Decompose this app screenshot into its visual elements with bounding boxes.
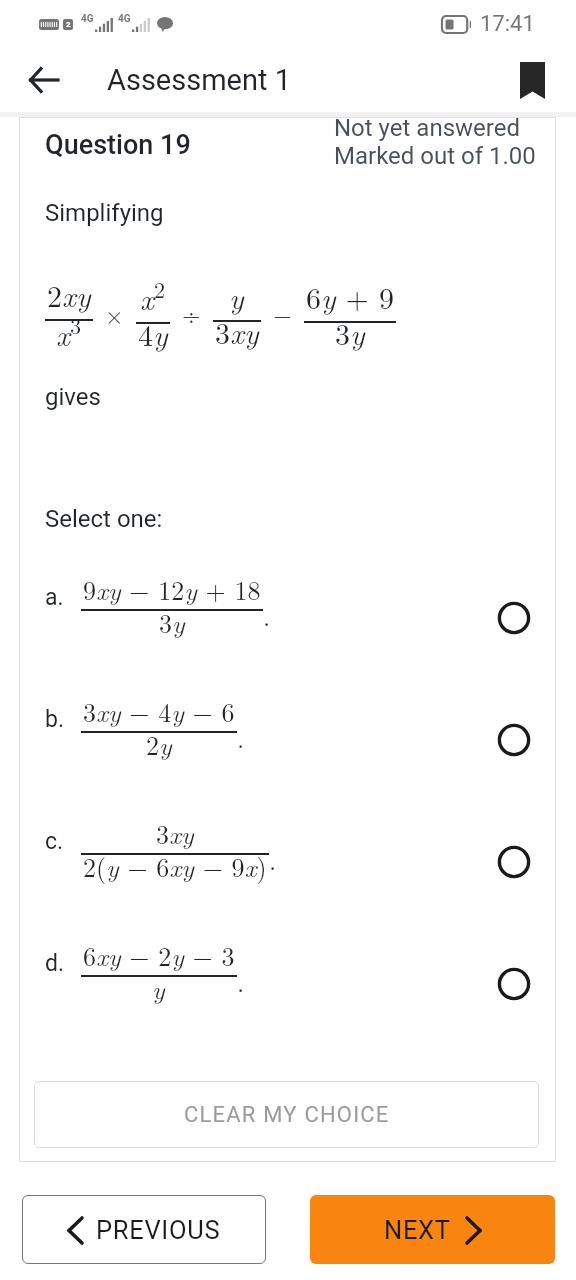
staticText: 3xy	[215, 310, 259, 353]
button[interactable]: c.	[45, 827, 536, 897]
button[interactable]: d.	[45, 949, 536, 1019]
staticText: 2xy	[47, 273, 91, 316]
staticText: 3xy − 4y − 6	[83, 693, 235, 730]
staticText: x2	[140, 273, 166, 319]
staticText: Select one:	[45, 505, 163, 533]
staticText: gives	[45, 383, 101, 411]
staticText: −	[273, 297, 292, 331]
staticText: 6y + 9	[306, 275, 394, 318]
staticText: .	[237, 963, 245, 1000]
button[interactable]: CLEAR MY CHOICE	[34, 1081, 539, 1148]
staticText: 4y	[138, 312, 168, 355]
staticText: d.	[45, 950, 81, 977]
staticText: y	[229, 275, 244, 317]
staticText: y	[152, 970, 165, 1007]
button[interactable]: b.	[45, 705, 536, 775]
staticText: 4G	[81, 13, 94, 25]
staticText: Question 19	[45, 129, 191, 161]
staticText: Assessment 1	[107, 63, 291, 97]
button[interactable]: Bookmark	[508, 56, 556, 104]
staticText: 3y	[335, 311, 365, 354]
staticText: ×	[105, 297, 124, 331]
button[interactable]: a.	[45, 583, 536, 653]
staticText: 9xy − 12y + 18	[83, 571, 261, 608]
staticText: Marked out of 1.00	[334, 142, 536, 170]
staticText: 2(y − 6xy − 9x)	[83, 848, 267, 885]
button[interactable]: Back	[20, 56, 68, 104]
staticText: Not yet answered	[334, 114, 520, 142]
staticText: 2	[66, 20, 71, 29]
staticText: 2y	[146, 726, 172, 763]
staticText: ÷	[182, 297, 201, 331]
staticText: PREVIOUS	[96, 1215, 221, 1245]
staticText: Simplifying	[45, 199, 164, 227]
staticText: 4G	[118, 13, 131, 25]
staticText: NEXT	[384, 1215, 451, 1245]
staticText: x3	[56, 309, 82, 355]
staticText: .	[269, 841, 277, 878]
staticText: 3xy	[156, 815, 194, 852]
staticText: c.	[45, 828, 81, 855]
staticText: 6xy − 2y − 3	[83, 937, 235, 974]
staticText: 3y	[159, 604, 185, 641]
staticText: CLEAR MY CHOICE	[184, 1102, 390, 1128]
staticText: .	[237, 719, 245, 756]
staticText: 17:41	[480, 11, 535, 37]
staticText: a.	[45, 584, 81, 611]
button[interactable]: NEXT	[310, 1195, 555, 1264]
button[interactable]: PREVIOUS	[22, 1195, 266, 1264]
staticText: b.	[45, 706, 81, 733]
staticText: .	[263, 597, 271, 634]
